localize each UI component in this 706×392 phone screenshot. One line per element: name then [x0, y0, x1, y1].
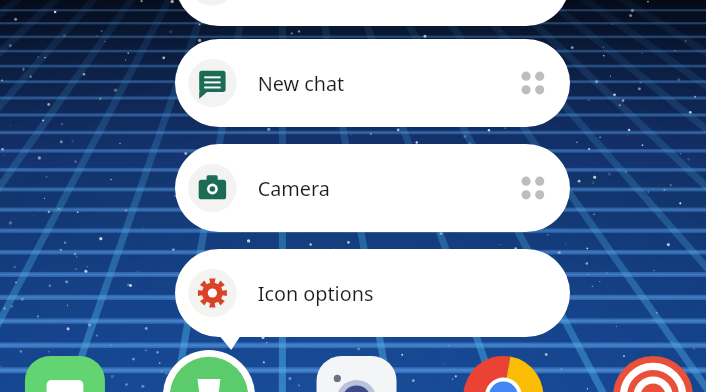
button[interactable]: [175, 249, 570, 350]
button[interactable]: [175, 39, 570, 127]
button[interactable]: [175, 144, 570, 232]
button[interactable]: [175, 0, 570, 26]
